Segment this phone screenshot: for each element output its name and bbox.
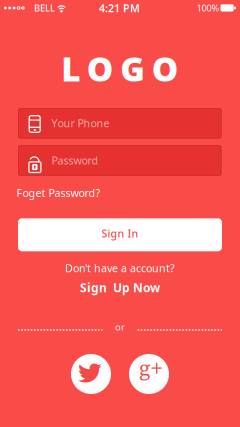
button[interactable]: Password [18,145,221,176]
staticText: g+ [139,353,162,383]
staticText: or [115,321,125,333]
staticText: Don't have a account? [65,261,175,275]
button[interactable]: Sign in with Google Plus [129,354,169,394]
staticText: Sign Up Now [80,279,160,295]
staticText: 4:21 PM [99,1,140,15]
button[interactable]: Your Phone [18,108,221,138]
staticText: G [120,46,145,91]
staticText: 100% [196,2,219,14]
staticText: O [152,46,179,91]
staticText:  [77,360,102,386]
button[interactable]: Sign In [18,218,222,251]
button[interactable]: Foget Password? [16,186,100,200]
button[interactable]: Sign Up Now [80,279,160,295]
staticText: O [87,46,114,91]
staticText: Foget Password? [16,186,100,200]
staticText: L [61,46,80,91]
staticText: Password [51,153,98,167]
staticText: BELL [34,2,55,14]
staticText: Your Phone [51,116,109,130]
button[interactable]: Sign in with Twitter [71,354,111,394]
staticText: Sign In [101,226,138,240]
